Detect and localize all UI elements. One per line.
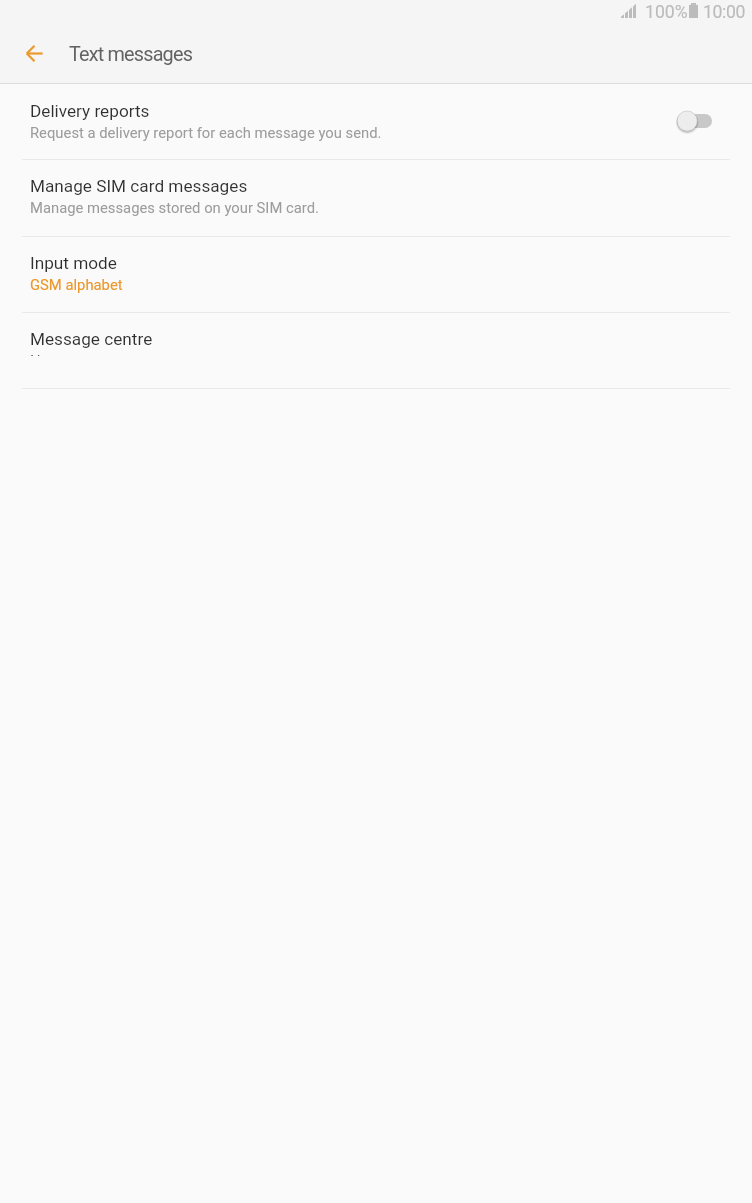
staticText: Input mode bbox=[30, 253, 117, 273]
staticText: Delivery reports bbox=[30, 101, 150, 121]
button[interactable]: Delivery reports bbox=[0, 85, 752, 160]
staticText: Message centre bbox=[30, 329, 153, 349]
button[interactable]: Manage SIM card messages bbox=[0, 160, 752, 237]
staticText: Text messages bbox=[69, 43, 193, 66]
button[interactable]: Input mode bbox=[0, 237, 752, 313]
button[interactable]: Navigate up bbox=[8, 30, 60, 82]
staticText: 100% bbox=[645, 2, 688, 23]
staticText: Request a delivery report for each messa… bbox=[30, 124, 382, 141]
button[interactable]: Message centre bbox=[0, 313, 752, 389]
staticText: Not set bbox=[30, 352, 78, 356]
staticText: GSM alphabet bbox=[30, 276, 123, 293]
staticText: Manage SIM card messages bbox=[30, 176, 248, 196]
staticText: Manage messages stored on your SIM card. bbox=[30, 199, 319, 216]
staticText: 10:00 bbox=[703, 2, 746, 23]
button[interactable]: Delivery reports bbox=[664, 104, 712, 138]
